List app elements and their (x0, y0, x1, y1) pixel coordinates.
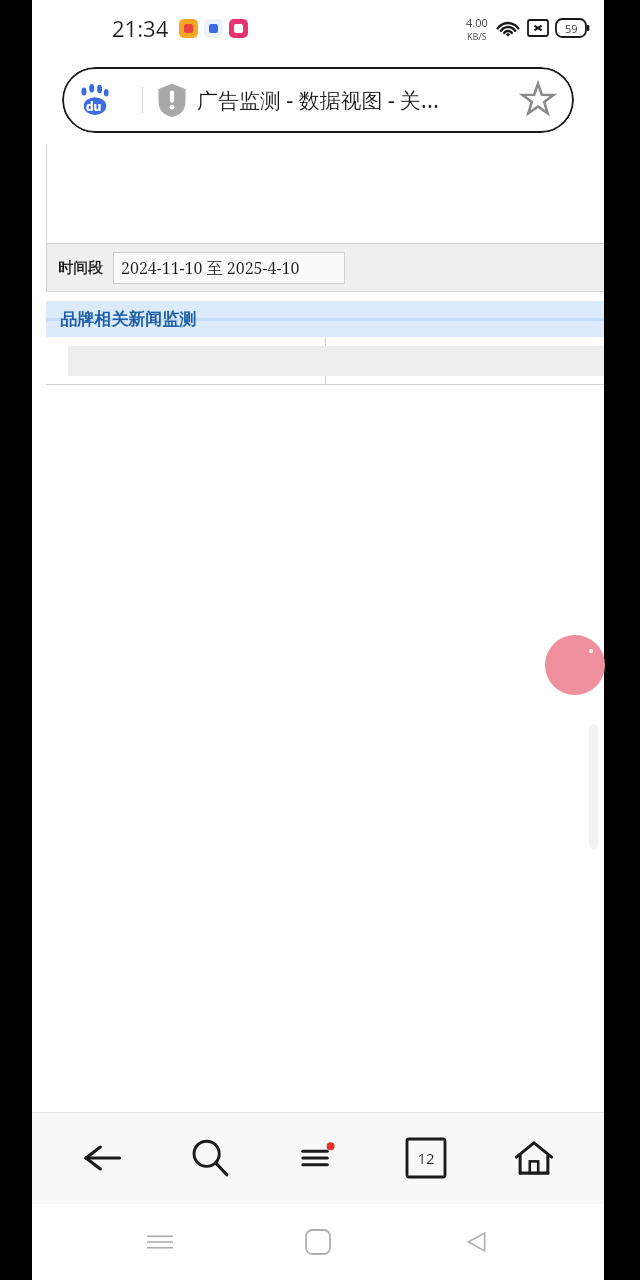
staticText: 12 (417, 1148, 435, 1168)
button[interactable]: Home (496, 1120, 572, 1196)
staticText: 59 (565, 21, 578, 36)
button[interactable]: Search (172, 1120, 248, 1196)
button[interactable]: Back (446, 1212, 506, 1272)
button[interactable]: Home (288, 1212, 348, 1272)
staticText: 时间段 (58, 259, 103, 278)
staticText: 广告监测 - 数据视图 - 关… (197, 86, 440, 115)
staticText: KB/S (467, 30, 487, 42)
staticText: 21:34 (112, 13, 169, 43)
button[interactable]: Back (64, 1120, 140, 1196)
staticText: 2024-11-10 至 2025-4-10 (121, 257, 300, 279)
staticText: 4.00 (466, 15, 488, 30)
button[interactable]: Tabs (388, 1120, 464, 1196)
button[interactable]: Menu (280, 1120, 356, 1196)
button[interactable]: Floating assistant (545, 635, 605, 695)
button[interactable]: 2024-11-10 至 2025-4-10 (113, 252, 345, 284)
staticText: 品牌相关新闻监测 (60, 309, 196, 330)
button[interactable]: du (62, 67, 574, 133)
button[interactable]: Recents (130, 1212, 190, 1272)
staticText: du (86, 98, 102, 114)
button[interactable]: Bookmark (518, 80, 558, 120)
